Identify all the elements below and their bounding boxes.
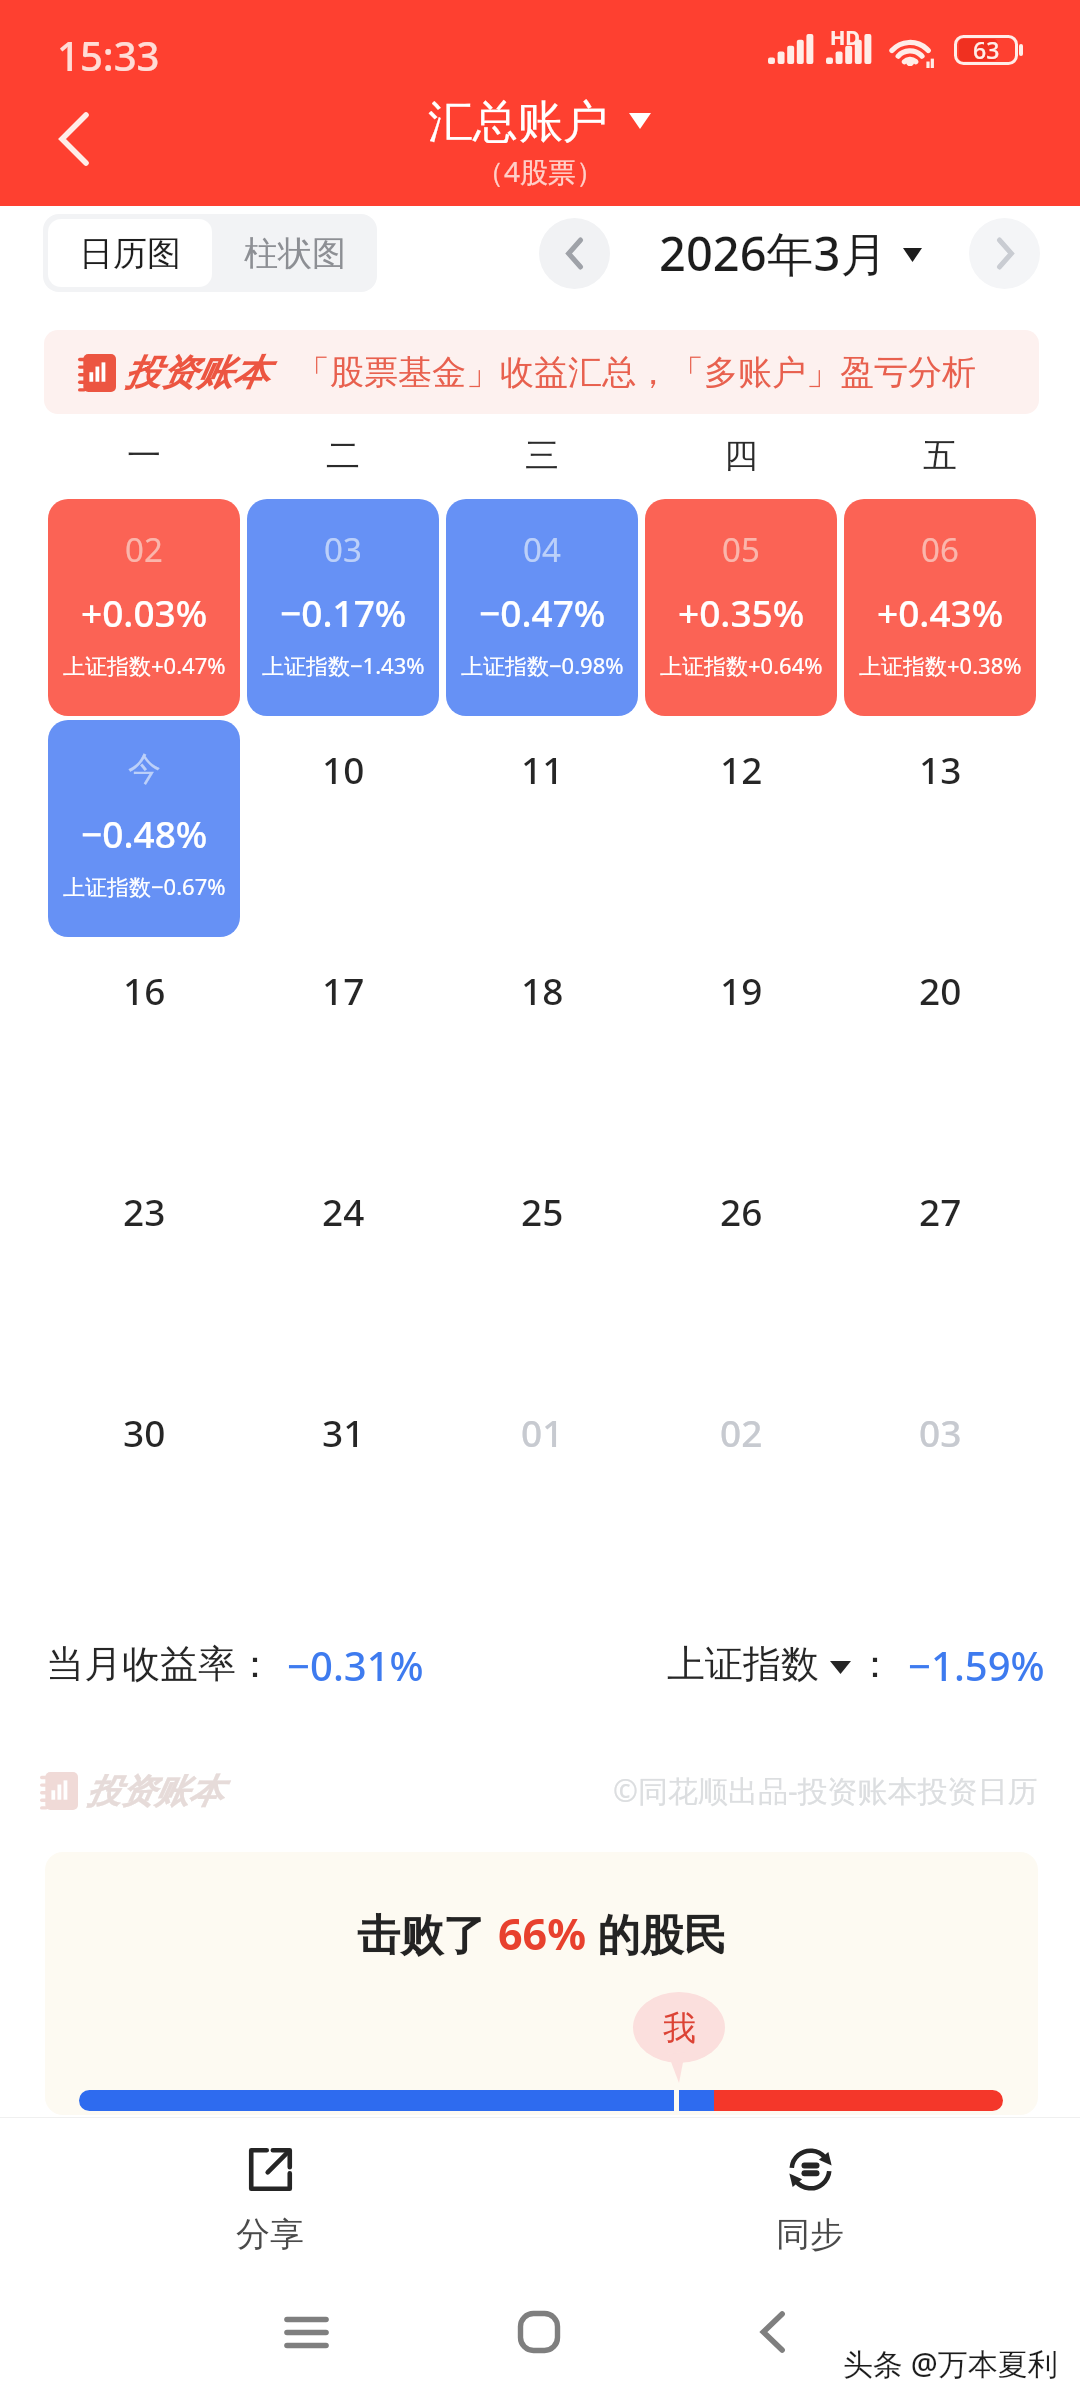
- button[interactable]: 10: [247, 720, 439, 937]
- button[interactable]: 01: [446, 1383, 638, 1600]
- staticText: 25: [521, 1186, 564, 1228]
- button[interactable]: 25: [446, 1162, 638, 1379]
- staticText: 03: [324, 527, 362, 567]
- staticText: −1.59%: [908, 1638, 1045, 1690]
- button[interactable]: 同步: [690, 2146, 930, 2266]
- button[interactable]: 20: [844, 941, 1036, 1158]
- staticText: （4股票）: [476, 152, 605, 190]
- staticText: 11: [521, 744, 564, 786]
- staticText: 03: [919, 1407, 962, 1449]
- staticText: 五: [923, 434, 957, 477]
- staticText: 17: [322, 965, 365, 1007]
- staticText: +0.35%: [678, 587, 805, 627]
- button[interactable]: 11: [446, 720, 638, 937]
- staticText: 投资账本: [86, 1770, 222, 1813]
- button[interactable]: 19: [645, 941, 837, 1158]
- button[interactable]: 汇总账户: [428, 94, 651, 144]
- staticText: 投资账本: [124, 350, 268, 395]
- button[interactable]: 24: [247, 1162, 439, 1379]
- button[interactable]: 分享: [150, 2146, 390, 2266]
- staticText: −0.48%: [81, 808, 208, 848]
- staticText: 26: [720, 1186, 763, 1228]
- staticText: 05: [722, 527, 760, 567]
- button[interactable]: 03: [247, 499, 439, 716]
- button[interactable]: 05: [645, 499, 837, 716]
- button[interactable]: 31: [247, 1383, 439, 1600]
- staticText: 04: [523, 527, 561, 567]
- button[interactable]: 02: [48, 499, 240, 716]
- staticText: 上证指数−0.67%: [63, 871, 226, 901]
- staticText: 汇总账户: [428, 94, 608, 144]
- staticText: 18: [521, 965, 564, 1007]
- button[interactable]: 26: [645, 1162, 837, 1379]
- staticText: HD: [830, 24, 860, 51]
- staticText: 63: [973, 34, 1000, 65]
- button[interactable]: Home: [489, 2282, 589, 2382]
- button[interactable]: 18: [446, 941, 638, 1158]
- staticText: 30: [123, 1407, 166, 1449]
- button[interactable]: 16: [48, 941, 240, 1158]
- button[interactable]: 日历图: [48, 219, 212, 287]
- staticText: 的股民: [586, 1904, 727, 1963]
- staticText: 击败了: [357, 1904, 498, 1963]
- staticText: 12: [720, 744, 763, 786]
- button[interactable]: Previous month: [539, 218, 610, 289]
- staticText: 19: [720, 965, 763, 1007]
- staticText: 10: [322, 744, 365, 786]
- button[interactable]: 我: [633, 1992, 725, 2063]
- staticText: 24: [322, 1186, 365, 1228]
- staticText: 上证指数+0.64%: [660, 650, 823, 680]
- button[interactable]: Back: [723, 2282, 823, 2382]
- staticText: 日历图: [79, 232, 181, 275]
- staticText: 上证指数+0.38%: [859, 650, 1022, 680]
- staticText: 上证指数−1.43%: [262, 650, 425, 680]
- staticText: 上证指数: [667, 1640, 819, 1688]
- staticText: 三: [525, 434, 559, 477]
- button[interactable]: 17: [247, 941, 439, 1158]
- staticText: +0.43%: [877, 587, 1004, 627]
- button[interactable]: Back: [28, 93, 120, 185]
- staticText: +0.03%: [81, 587, 208, 627]
- button[interactable]: 04: [446, 499, 638, 716]
- staticText: 头条 @万本夏利: [843, 2343, 1058, 2384]
- staticText: 20: [919, 965, 962, 1007]
- button[interactable]: 13: [844, 720, 1036, 937]
- button[interactable]: 上证指数: [667, 1638, 1045, 1690]
- staticText: 今: [128, 748, 161, 788]
- staticText: −0.47%: [479, 587, 606, 627]
- staticText: 06: [921, 527, 959, 567]
- button[interactable]: 03: [844, 1383, 1036, 1600]
- staticText: −0.17%: [280, 587, 407, 627]
- staticText: 2026年3月: [659, 221, 888, 285]
- button[interactable]: 12: [645, 720, 837, 937]
- button[interactable]: 06: [844, 499, 1036, 716]
- staticText: 上证指数+0.47%: [63, 650, 226, 680]
- button[interactable]: 柱状图: [212, 214, 377, 292]
- button[interactable]: 02: [645, 1383, 837, 1600]
- staticText: 上证指数−0.98%: [461, 650, 624, 680]
- button[interactable]: 23: [48, 1162, 240, 1379]
- staticText: 66%: [498, 1904, 586, 1963]
- staticText: 分享: [236, 2213, 304, 2256]
- staticText: 23: [123, 1186, 166, 1228]
- staticText: 「股票基金」收益汇总，「多账户」盈亏分析: [296, 351, 976, 394]
- button[interactable]: 投资账本: [44, 330, 1039, 414]
- staticText: 当月收益率：: [46, 1640, 274, 1688]
- staticText: 15:33: [57, 28, 160, 82]
- staticText: 我: [663, 2007, 696, 2049]
- button[interactable]: Recent apps: [256, 2282, 356, 2382]
- staticText: 16: [123, 965, 166, 1007]
- button[interactable]: 30: [48, 1383, 240, 1600]
- staticText: 02: [720, 1407, 763, 1449]
- button[interactable]: 27: [844, 1162, 1036, 1379]
- button[interactable]: 今: [48, 720, 240, 937]
- staticText: 01: [521, 1407, 564, 1449]
- staticText: 柱状图: [244, 232, 346, 275]
- staticText: ：: [856, 1640, 894, 1688]
- staticText: 27: [919, 1186, 962, 1228]
- staticText: 02: [125, 527, 163, 567]
- staticText: 同步: [776, 2213, 844, 2256]
- button[interactable]: Next month: [969, 218, 1040, 289]
- staticText: ©同花顺出品-投资账本投资日历: [613, 1770, 1038, 1811]
- button[interactable]: 2026年3月: [659, 218, 922, 288]
